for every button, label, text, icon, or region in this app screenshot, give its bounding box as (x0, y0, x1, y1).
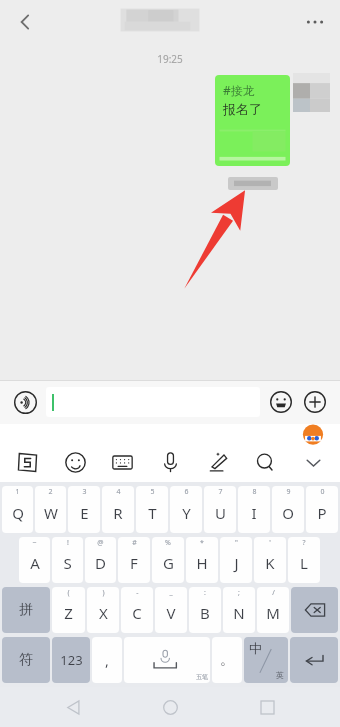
button[interactable]: 1 (2, 486, 33, 533)
staticText: U (215, 503, 226, 523)
button[interactable]: ' (254, 537, 286, 583)
staticText: 19:25 (157, 52, 183, 66)
staticText: X (99, 603, 108, 623)
staticText: V (166, 603, 176, 623)
button[interactable]: * (186, 537, 218, 583)
button[interactable]: ( (52, 587, 85, 633)
button[interactable]: : (189, 587, 221, 633)
button[interactable]: Handwriting (201, 445, 235, 479)
staticText: 中 (249, 640, 262, 656)
button[interactable]: " (220, 537, 252, 583)
button[interactable]: % (152, 537, 184, 583)
button[interactable]: Backspace (291, 587, 338, 633)
button[interactable]: ~ (19, 537, 50, 583)
staticText: S (63, 553, 72, 573)
button[interactable]: 0 (306, 486, 338, 533)
staticText: T (148, 503, 157, 523)
staticText: Y (182, 503, 191, 523)
button[interactable]: 参与接龙 (228, 177, 278, 190)
button[interactable]: Voice input (8, 385, 42, 419)
staticText: 报名了 (223, 101, 262, 117)
staticText: @ (97, 538, 104, 548)
staticText: B (200, 603, 210, 623)
staticText: # (132, 538, 137, 548)
button[interactable] (118, 7, 202, 33)
staticText: I (251, 503, 257, 523)
button[interactable]: ) (87, 587, 119, 633)
button[interactable]: Numbers (52, 637, 90, 683)
staticText: L (300, 553, 308, 573)
staticText: E (80, 503, 89, 523)
staticText: M (266, 603, 280, 623)
button[interactable]: Search (248, 445, 282, 479)
staticText: 8 (252, 487, 257, 497)
staticText: Q (12, 503, 24, 523)
button[interactable]: Back (4, 1, 46, 43)
staticText: 7 (218, 487, 223, 497)
button[interactable] (46, 387, 260, 417)
staticText: 符 (19, 651, 33, 669)
button[interactable]: _ (155, 587, 187, 633)
button[interactable]: 7 (204, 486, 236, 533)
staticText: ~ (32, 538, 37, 548)
staticText: G (163, 553, 174, 573)
staticText: - (136, 588, 139, 598)
button[interactable]: Keyboard (105, 445, 139, 479)
button[interactable]: Emoji (264, 385, 298, 419)
button[interactable]: 4 (102, 486, 134, 533)
button[interactable]: Comma (92, 637, 122, 683)
button[interactable]: 5 (136, 486, 168, 533)
button[interactable]: Home (146, 687, 194, 727)
button[interactable]: 6 (170, 486, 202, 533)
button[interactable]: 3 (68, 486, 100, 533)
button[interactable]: 2 (35, 486, 66, 533)
button[interactable]: ? (288, 537, 320, 583)
button[interactable]: @ (85, 537, 116, 583)
button[interactable]: Space (124, 637, 210, 683)
button[interactable]: 9 (272, 486, 304, 533)
staticText: 。 (220, 651, 234, 669)
button[interactable]: Recent apps (243, 687, 291, 727)
button[interactable]: - (121, 587, 153, 633)
button[interactable]: # (118, 537, 150, 583)
button[interactable]: ! (52, 537, 83, 583)
staticText: 123 (60, 651, 83, 669)
button[interactable]: Voice (153, 445, 187, 479)
staticText: ) (102, 588, 105, 598)
button[interactable]: Assistant (302, 426, 324, 448)
staticText: ? (302, 538, 306, 548)
staticText: D (95, 553, 106, 573)
staticText: 五笔 (196, 673, 208, 681)
button[interactable]: Symbols (2, 637, 50, 683)
button[interactable]: Chinese English toggle (244, 637, 288, 683)
staticText: : (204, 588, 206, 598)
staticText: 3 (82, 487, 87, 497)
staticText: ! (67, 538, 69, 548)
staticText: / (272, 588, 275, 598)
button[interactable]: / (257, 587, 289, 633)
button[interactable]: Period (212, 637, 242, 683)
button[interactable]: Back (49, 687, 97, 727)
button[interactable]: #接龙 (215, 75, 290, 166)
staticText: 9 (286, 487, 291, 497)
button[interactable]: 8 (238, 486, 270, 533)
button[interactable]: Enter (290, 637, 338, 683)
staticText: C (132, 603, 142, 623)
button[interactable]: Collapse keyboard (296, 445, 330, 479)
staticText: N (233, 603, 245, 623)
staticText: 1 (15, 487, 20, 497)
button[interactable]: Emoticons (58, 445, 92, 479)
staticText: O (282, 503, 294, 523)
button[interactable]: More options (294, 1, 336, 43)
button[interactable]: ; (223, 587, 255, 633)
button[interactable]: Sogou input (10, 445, 44, 479)
staticText: R (113, 503, 123, 523)
staticText: W (44, 503, 58, 523)
staticText: 拼 (19, 601, 33, 619)
button[interactable]: Pinyin mode (2, 587, 50, 633)
staticText: 英 (276, 670, 284, 680)
staticText: " (235, 538, 238, 548)
button[interactable]: More functions (298, 385, 332, 419)
staticText: #接龙 (223, 82, 255, 98)
staticText: Z (64, 603, 73, 623)
